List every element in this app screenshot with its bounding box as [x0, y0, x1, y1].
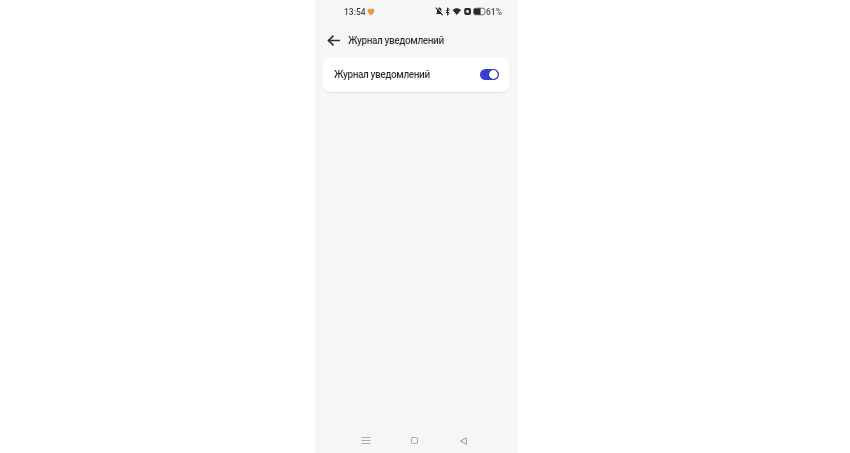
- staticText: 13:54: [344, 7, 366, 17]
- button[interactable]: [402, 428, 427, 453]
- button[interactable]: [322, 30, 346, 51]
- button[interactable]: [353, 428, 378, 453]
- staticText: Журнал уведомлений: [348, 35, 444, 47]
- button[interactable]: [451, 428, 476, 453]
- button[interactable]: [480, 69, 499, 80]
- staticText: 61%: [486, 7, 502, 17]
- button[interactable]: Журнал уведомлений: [323, 57, 509, 92]
- staticText: Журнал уведомлений: [334, 69, 430, 81]
